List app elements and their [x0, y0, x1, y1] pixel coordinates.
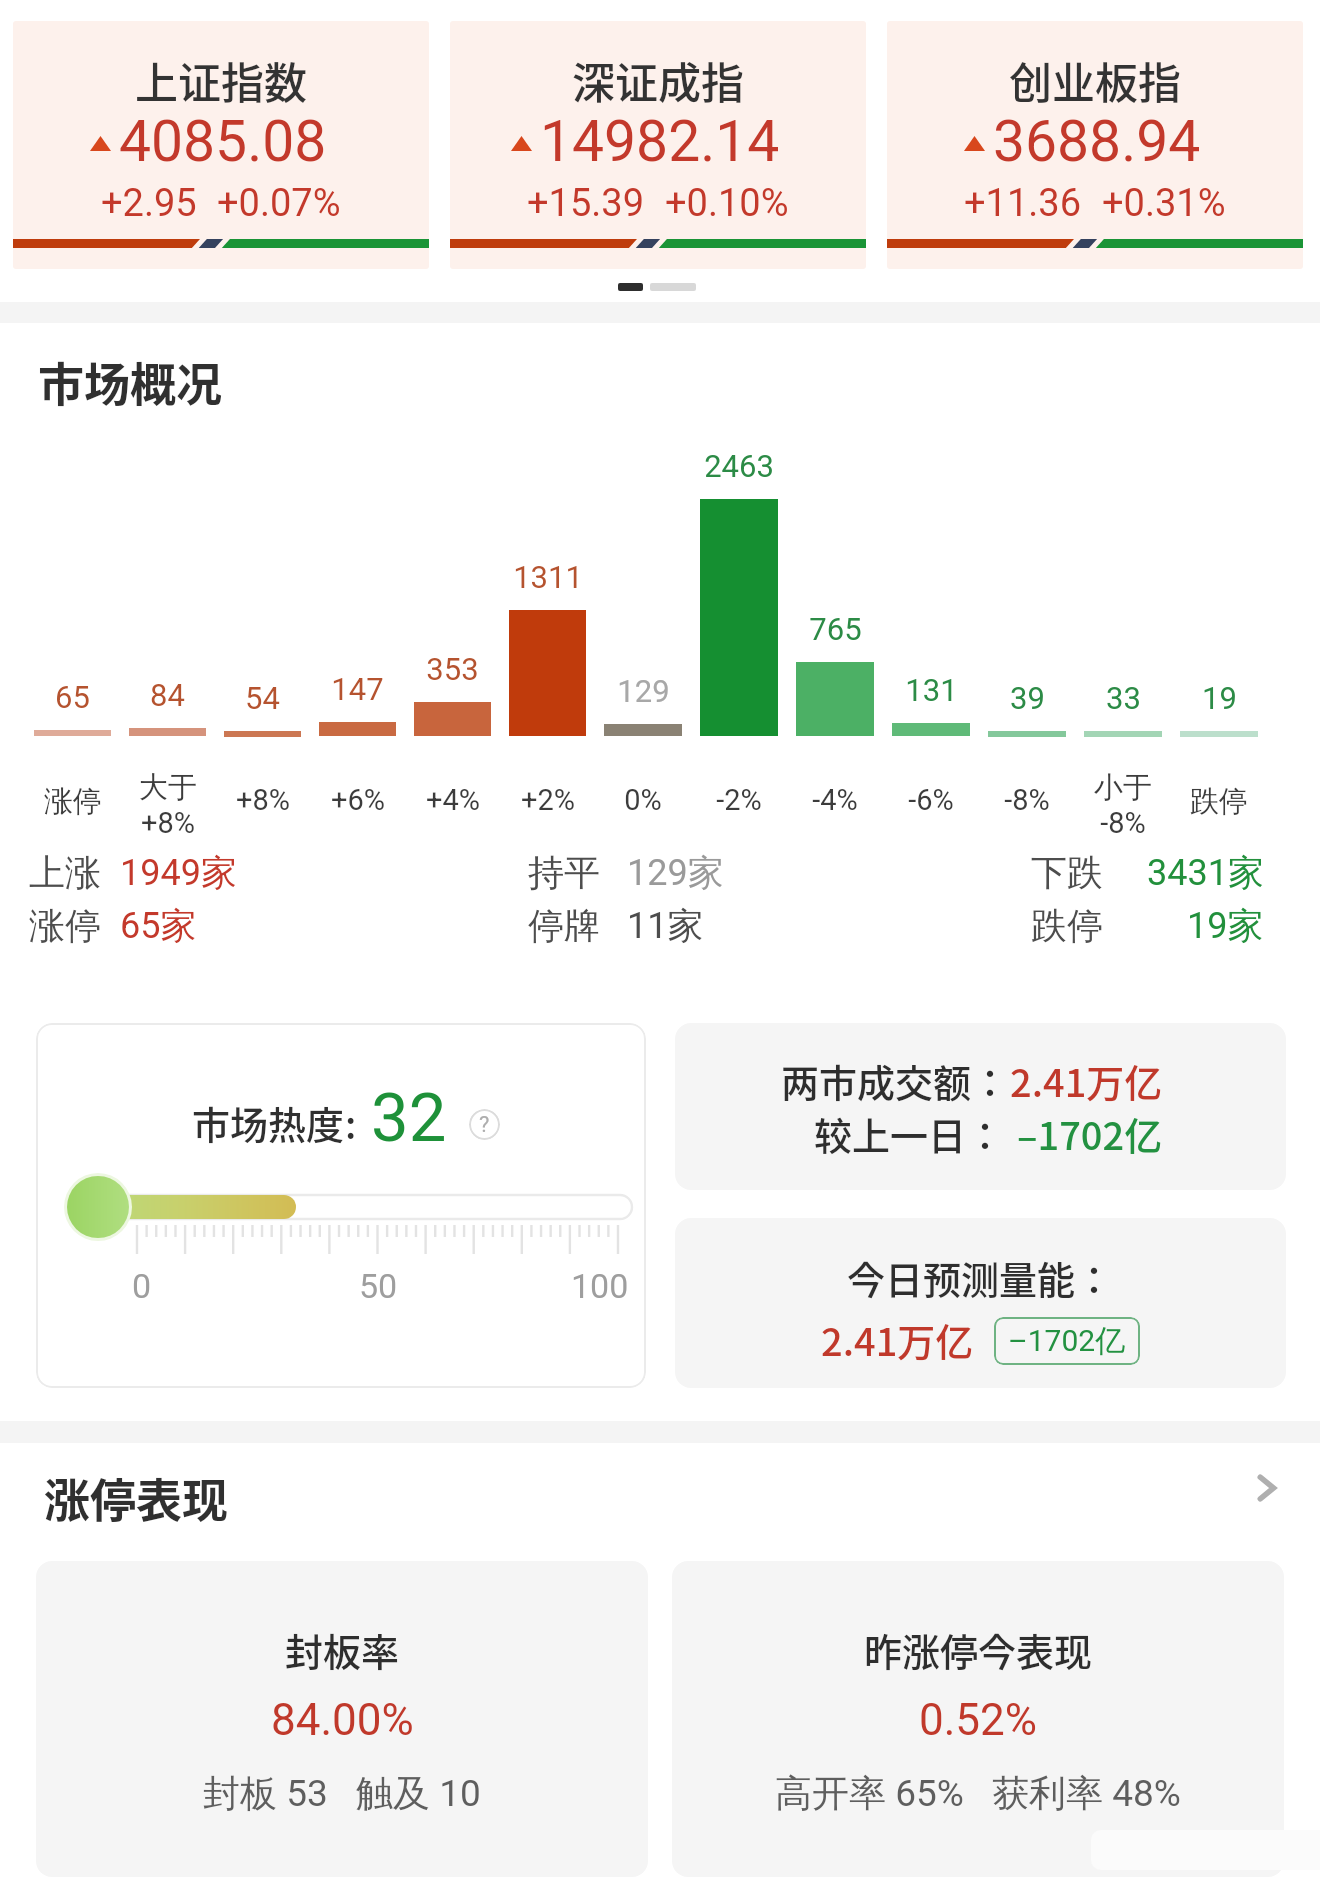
staticText: 65家 — [120, 903, 197, 948]
staticText: 33 — [1106, 680, 1141, 716]
staticText: +0.10% — [665, 181, 789, 226]
staticText: 触及 10 — [356, 1770, 481, 1817]
staticText: 131 — [905, 672, 958, 708]
staticText: 19家 — [1187, 903, 1264, 948]
staticText: 54 — [245, 680, 280, 716]
staticText: : — [345, 1095, 357, 1150]
staticText: 高开率 65% — [775, 1770, 964, 1817]
staticText: 较上一日： — [814, 1106, 1005, 1161]
button[interactable]: 封板率 — [36, 1561, 648, 1877]
staticText: +0.07% — [217, 181, 341, 226]
button[interactable]: 涨停表现 — [44, 1464, 1284, 1534]
button[interactable]: 昨涨停今表现 — [672, 1561, 1284, 1877]
staticText: 0 — [132, 1266, 152, 1306]
staticText: 小于 — [1094, 769, 1152, 806]
staticText: 19 — [1202, 680, 1237, 716]
staticText: 65 — [55, 679, 90, 715]
staticText: 2463 — [704, 448, 774, 484]
staticText: +0.31% — [1102, 181, 1226, 226]
staticText: 1949家 — [120, 850, 237, 895]
staticText: 353 — [426, 651, 479, 687]
other: 更多 — [1248, 1470, 1284, 1506]
staticText: 深证成指 — [572, 49, 744, 111]
staticText: 大于 — [139, 769, 197, 806]
staticText: 创业板指 — [1009, 49, 1181, 111]
staticText: +11.36 — [964, 181, 1082, 226]
staticText: 市场热度 — [192, 1095, 345, 1150]
staticText: 涨停 — [44, 783, 102, 820]
staticText: +8% — [236, 783, 290, 817]
staticText: 147 — [331, 671, 384, 707]
staticText: 两市成交额： — [781, 1053, 1010, 1108]
staticText: 3688.94 — [993, 108, 1201, 175]
staticText: 3431家 — [1147, 850, 1264, 895]
staticText: 14982.14 — [540, 108, 780, 175]
staticText: +6% — [331, 783, 385, 817]
staticText: 100 — [571, 1266, 629, 1306]
staticText: -8% — [1004, 783, 1050, 817]
button[interactable]: 深证成指 — [450, 21, 866, 269]
staticText: 封板 53 — [203, 1770, 328, 1817]
staticText: 84.00% — [271, 1694, 414, 1746]
staticText: 1311 — [513, 559, 583, 595]
staticText: -2% — [716, 783, 762, 817]
staticText: 市场概况 — [38, 348, 222, 415]
staticText: 50 — [359, 1266, 398, 1306]
staticText: –1702亿 — [1008, 1322, 1126, 1360]
staticText: –1702亿 — [1017, 1106, 1163, 1161]
staticText: 今日预测量能： — [847, 1250, 1114, 1305]
staticText: +15.39 — [527, 181, 645, 226]
button[interactable]: 今日预测量能： — [675, 1218, 1286, 1388]
staticText: -4% — [812, 783, 858, 817]
staticText: 持平 — [528, 850, 600, 895]
staticText: +8% — [141, 806, 195, 840]
staticText: 上涨 — [29, 850, 101, 895]
staticText: 11家 — [627, 903, 704, 948]
staticText: 765 — [809, 611, 862, 647]
button[interactable]: 说明 — [469, 1109, 500, 1140]
staticText: 涨停 — [29, 903, 101, 948]
staticText: 39 — [1010, 680, 1045, 716]
button[interactable]: 创业板指 — [887, 21, 1303, 269]
staticText: 2.41万亿 — [1010, 1053, 1163, 1108]
staticText: 封板率 — [285, 1622, 400, 1677]
staticText: 32 — [371, 1079, 447, 1158]
staticText: 2.41万亿 — [821, 1312, 974, 1367]
staticText: +4% — [426, 783, 480, 817]
staticText: 0.52% — [919, 1694, 1038, 1746]
staticText: 129家 — [627, 850, 724, 895]
staticText: ? — [479, 1112, 490, 1138]
staticText: 129 — [617, 673, 670, 709]
button[interactable]: 市场热度 — [36, 1023, 646, 1388]
staticText: 跌停 — [1031, 903, 1103, 948]
staticText: 4085.08 — [119, 108, 327, 175]
staticText: 0% — [624, 783, 662, 817]
staticText: +2% — [521, 783, 575, 817]
button[interactable]: 两市成交额： — [675, 1023, 1286, 1190]
staticText: 涨停表现 — [44, 1464, 228, 1531]
staticText: +2.95 — [101, 181, 197, 226]
staticText: 84 — [150, 677, 185, 713]
staticText: 停牌 — [528, 903, 600, 948]
staticText: -8% — [1100, 806, 1146, 840]
staticText: 跌停 — [1190, 783, 1248, 820]
button[interactable]: 上证指数 — [13, 21, 429, 269]
staticText: 昨涨停今表现 — [864, 1622, 1093, 1677]
staticText: 获利率 48% — [992, 1770, 1181, 1817]
staticText: 上证指数 — [135, 49, 307, 111]
staticText: -6% — [908, 783, 954, 817]
staticText: 下跌 — [1031, 850, 1103, 895]
